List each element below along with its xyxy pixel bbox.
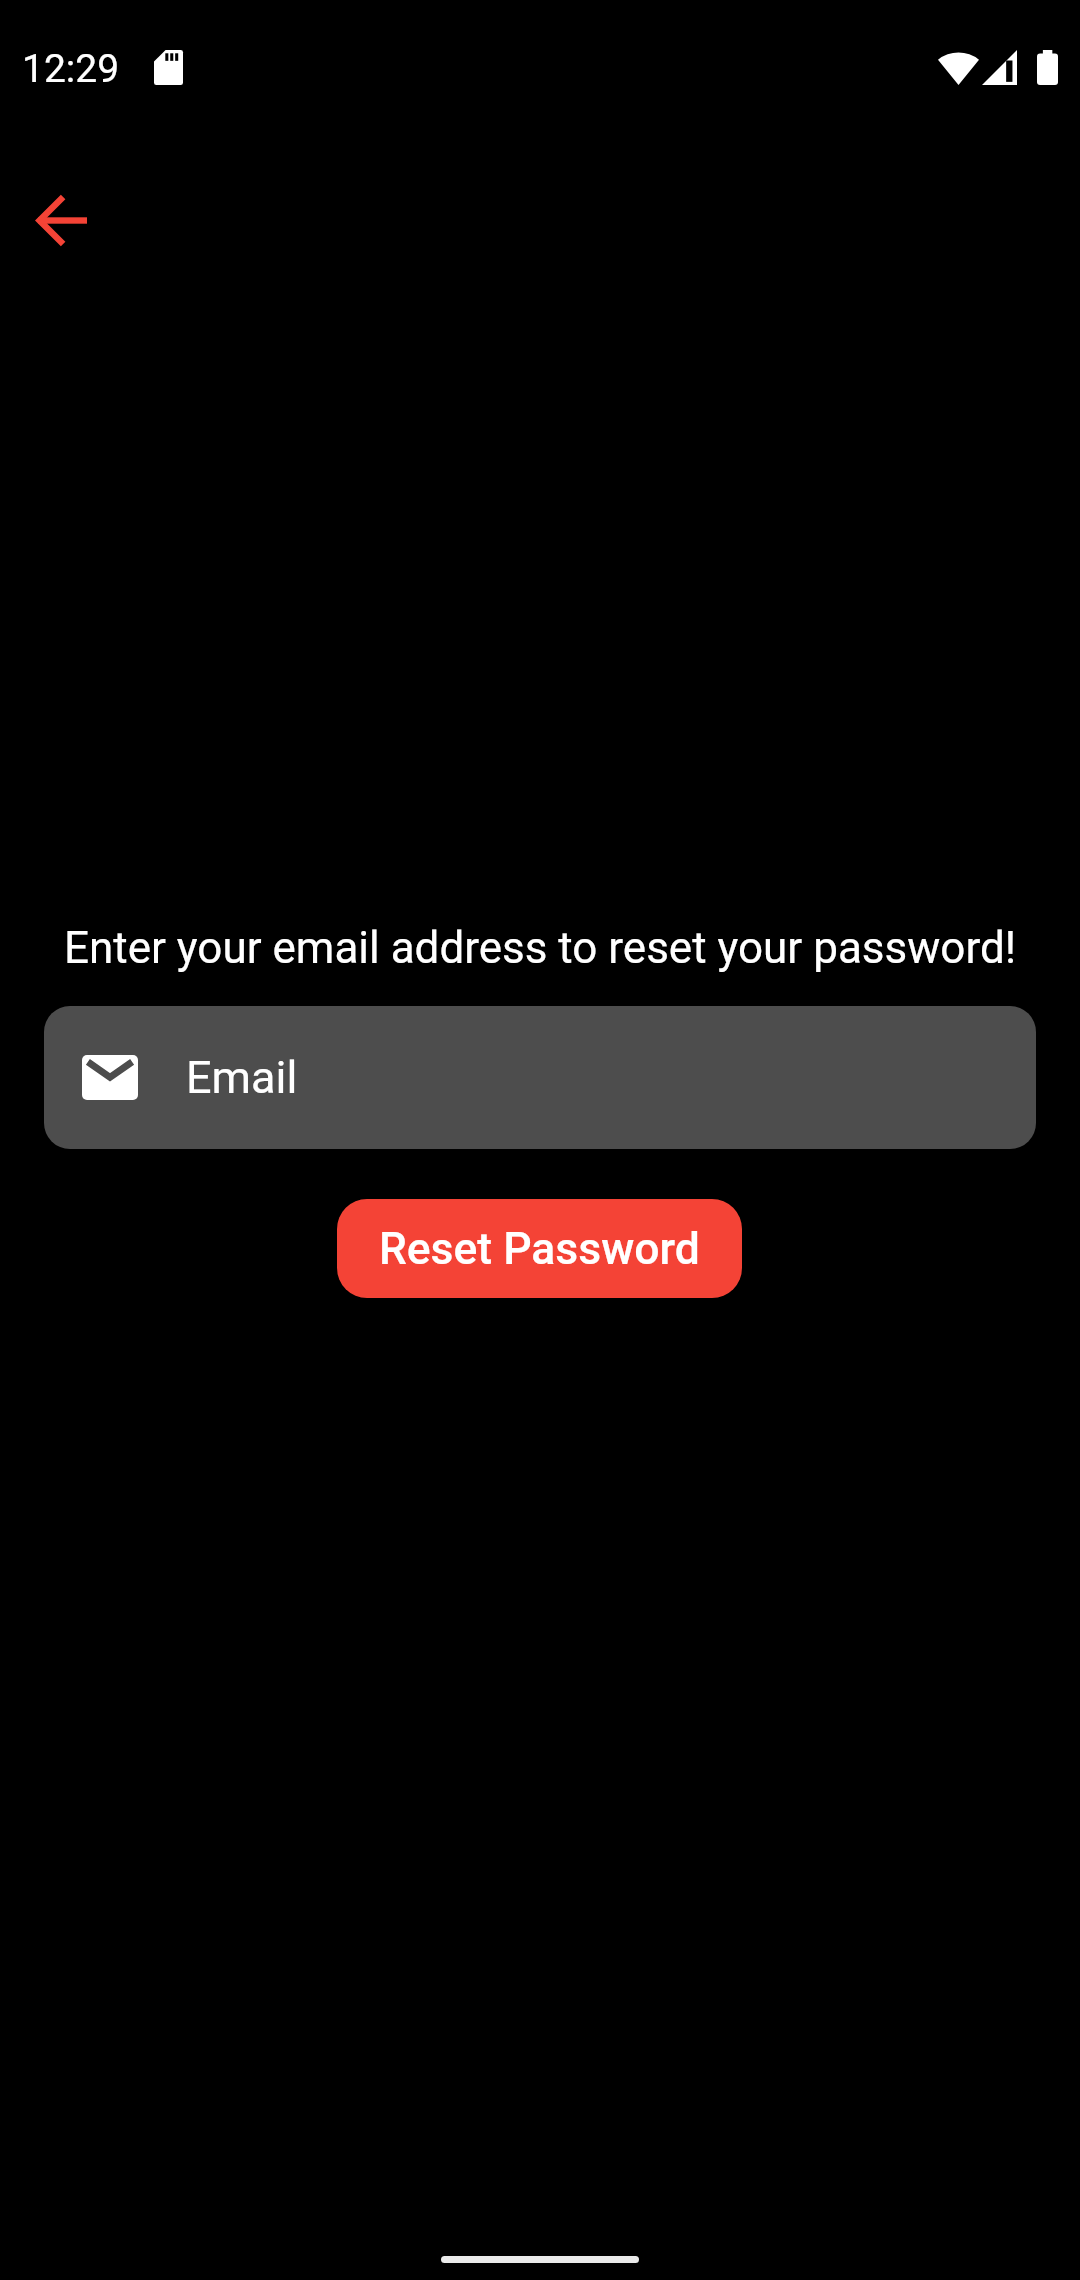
staticText: Enter your email address to reset your p… bbox=[0, 922, 1080, 974]
staticText: 12:29 bbox=[22, 46, 120, 92]
button[interactable]: Navigate back bbox=[14, 174, 107, 267]
staticText: Reset Password bbox=[379, 1223, 700, 1275]
button[interactable]: Email bbox=[44, 1006, 1036, 1149]
button[interactable]: Reset Password bbox=[337, 1199, 742, 1298]
staticText: Email bbox=[186, 1051, 298, 1104]
